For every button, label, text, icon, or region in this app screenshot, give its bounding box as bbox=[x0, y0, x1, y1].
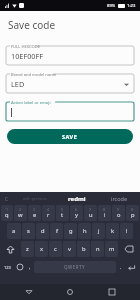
staticText: g bbox=[69, 227, 73, 235]
staticText: c bbox=[54, 245, 57, 253]
staticText: y bbox=[75, 211, 78, 219]
staticText: with.green.io bbox=[23, 196, 47, 201]
staticText: 8 bbox=[103, 207, 106, 212]
button[interactable]: n bbox=[91, 241, 104, 257]
button[interactable]: m bbox=[105, 241, 118, 257]
staticText: i bbox=[104, 211, 106, 219]
button[interactable]: Emoji bbox=[14, 260, 25, 274]
button[interactable]: b bbox=[77, 241, 90, 257]
staticText: l bbox=[126, 227, 128, 235]
button[interactable]: 1 bbox=[1, 205, 13, 221]
button[interactable]: QWERTY bbox=[34, 261, 116, 273]
staticText: , bbox=[29, 264, 31, 271]
button[interactable]: ircode bbox=[98, 195, 140, 202]
button[interactable]: Shift bbox=[1, 242, 20, 256]
button[interactable]: Keyboard settings bbox=[0, 192, 13, 205]
button[interactable]: l bbox=[120, 223, 133, 239]
button[interactable]: . bbox=[117, 260, 124, 274]
staticText: k bbox=[111, 227, 115, 235]
staticText: 10EF00FF bbox=[11, 51, 44, 61]
button[interactable]: Back bbox=[16, 284, 42, 300]
staticText: 9 bbox=[117, 207, 120, 212]
button[interactable]: FULL HEXCODE bbox=[6, 43, 134, 65]
staticText: t bbox=[61, 211, 64, 219]
staticText: 1:23 bbox=[127, 3, 136, 9]
staticText: f bbox=[56, 227, 58, 235]
staticText: a bbox=[12, 227, 16, 235]
button[interactable]: k bbox=[106, 223, 119, 239]
staticText: 1 bbox=[6, 207, 9, 212]
staticText: 0 bbox=[131, 207, 134, 212]
staticText: SAVE bbox=[62, 133, 78, 140]
staticText: q bbox=[5, 211, 9, 219]
staticText: . bbox=[120, 264, 122, 271]
button[interactable]: x bbox=[35, 241, 48, 257]
staticText: b bbox=[82, 245, 86, 253]
staticText: LED bbox=[11, 79, 25, 89]
staticText: 3 bbox=[33, 207, 36, 212]
staticText: QWERTY bbox=[64, 264, 86, 270]
staticText: v bbox=[68, 245, 71, 253]
staticText: e bbox=[33, 211, 37, 219]
button[interactable]: 9 bbox=[112, 205, 125, 221]
button[interactable]: Enter bbox=[125, 260, 138, 274]
staticText: j bbox=[98, 227, 100, 235]
staticText: 7 bbox=[89, 207, 92, 212]
staticText: o bbox=[117, 211, 121, 219]
staticText: h bbox=[83, 227, 87, 235]
button[interactable]: 5 bbox=[56, 205, 69, 221]
staticText: ircode bbox=[111, 195, 128, 202]
staticText: u bbox=[89, 211, 93, 219]
button[interactable]: 0 bbox=[126, 205, 139, 221]
button[interactable]: f bbox=[50, 223, 63, 239]
button[interactable]: v bbox=[63, 241, 76, 257]
staticText: redmi bbox=[68, 195, 86, 203]
button[interactable]: s bbox=[22, 223, 35, 239]
button[interactable]: 7 bbox=[84, 205, 97, 221]
button[interactable]: d bbox=[36, 223, 49, 239]
button[interactable]: , bbox=[26, 260, 33, 274]
button[interactable]: c bbox=[49, 241, 62, 257]
button[interactable]: 3 bbox=[28, 205, 41, 221]
staticText: x bbox=[40, 245, 44, 253]
button[interactable]: a bbox=[7, 223, 21, 239]
button[interactable]: SAVE bbox=[7, 129, 133, 144]
staticText: C bbox=[5, 196, 8, 202]
button[interactable]: redmi bbox=[56, 195, 98, 203]
staticText: s bbox=[27, 227, 30, 235]
button[interactable]: Brand and model name bbox=[6, 71, 134, 93]
staticText: w bbox=[18, 211, 23, 219]
staticText: 4 bbox=[47, 207, 50, 212]
staticText: 6 bbox=[75, 207, 78, 212]
button[interactable]: Home bbox=[57, 284, 83, 300]
staticText: d bbox=[41, 227, 45, 235]
staticText: n bbox=[96, 245, 100, 253]
button[interactable]: 2 bbox=[14, 205, 27, 221]
button[interactable]: 4 bbox=[42, 205, 55, 221]
staticText: Save code bbox=[8, 18, 56, 32]
staticText: r bbox=[47, 211, 50, 219]
button[interactable]: 123 bbox=[2, 260, 13, 274]
staticText: 123 bbox=[4, 265, 11, 270]
staticText: FULL HEXCODE bbox=[11, 44, 41, 50]
button[interactable]: h bbox=[78, 223, 91, 239]
staticText: 2 bbox=[19, 207, 22, 212]
button[interactable]: z bbox=[21, 241, 34, 257]
staticText: 89% bbox=[107, 3, 116, 9]
staticText: Action label or emoji bbox=[11, 100, 51, 106]
staticText: z bbox=[26, 245, 29, 253]
staticText: Brand and model name bbox=[11, 72, 57, 78]
button[interactable]: 8 bbox=[98, 205, 111, 221]
button[interactable]: 6 bbox=[70, 205, 83, 221]
button[interactable]: g bbox=[64, 223, 77, 239]
staticText: p bbox=[131, 211, 135, 219]
button[interactable]: Action label or emoji bbox=[6, 99, 134, 121]
button[interactable]: j bbox=[92, 223, 105, 239]
staticText: 5 bbox=[61, 207, 64, 212]
button[interactable]: Recent apps bbox=[99, 284, 125, 300]
button[interactable]: Backspace bbox=[119, 242, 139, 256]
staticText: m bbox=[109, 245, 115, 253]
